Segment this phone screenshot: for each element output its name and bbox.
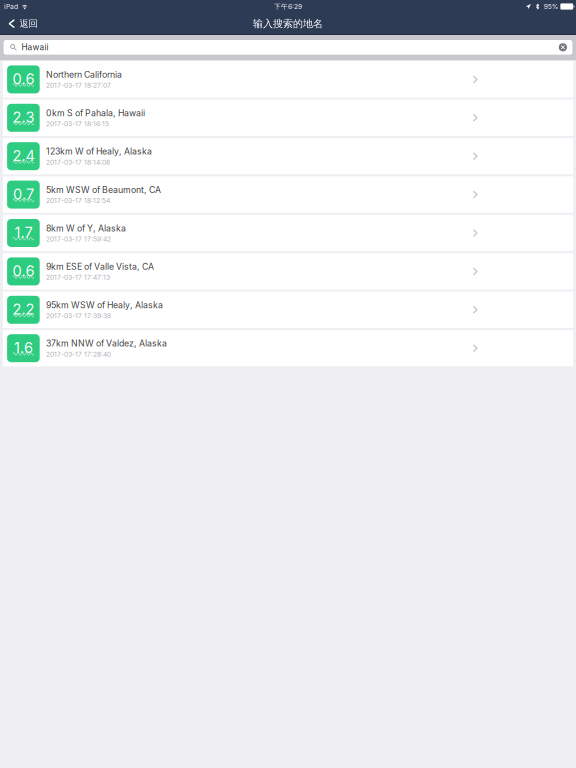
staticText: 下午6:29 [274, 2, 302, 11]
button[interactable]: 1.6 [3, 330, 573, 366]
staticText: 0.6 [12, 70, 34, 88]
staticText: 2.4 [12, 147, 34, 164]
staticText: 返回 [20, 18, 38, 30]
button[interactable]: 0.7 [3, 176, 573, 213]
staticText: 0.7 [13, 185, 34, 203]
staticText: 2017-03-17 18:27:07 [46, 81, 111, 89]
staticText: 2017-03-17 17:59:42 [46, 235, 111, 243]
staticText: 95km WSW of Healy, Alaska [46, 300, 163, 310]
staticText: 2017-03-17 17:47:13 [46, 273, 110, 281]
staticText: 8km W of Y, Alaska [46, 223, 126, 233]
staticText: 37km NNW of Valdez, Alaska [46, 338, 167, 349]
staticText: 2.2 [12, 300, 34, 318]
button[interactable]: Clear search text [559, 41, 572, 53]
staticText: 2.3 [12, 108, 34, 126]
staticText: Hawaii [22, 42, 49, 52]
staticText: 1.6 [14, 339, 33, 356]
staticText: 5km WSW of Beaumont, CA [46, 184, 161, 195]
staticText: 1.7 [14, 224, 32, 241]
staticText: 2017-03-17 18:14:08 [46, 158, 110, 166]
staticText: 2017-03-17 17:28:40 [46, 350, 111, 358]
staticText: 输入搜索的地名 [253, 17, 323, 30]
staticText: 95% [544, 2, 559, 11]
button[interactable]: 2.4 [3, 138, 573, 174]
staticText: Northern California [46, 69, 122, 80]
button[interactable]: 0.6 [3, 61, 573, 98]
button[interactable]: 1.7 [3, 215, 573, 251]
button[interactable]: 2.3 [3, 100, 573, 136]
staticText: 0.6 [12, 262, 34, 280]
staticText: iPad [4, 2, 18, 11]
staticText: 2017-03-17 18:16:15 [46, 120, 109, 128]
button[interactable]: 2.2 [3, 292, 573, 328]
staticText: 9km ESE of Valle Vista, CA [46, 261, 154, 272]
staticText: 123km W of Healy, Alaska [46, 146, 152, 157]
staticText: 2017-03-17 17:39:38 [46, 312, 111, 320]
button[interactable]: 返回 [0, 13, 46, 35]
staticText: 0km S of Pahala, Hawaii [46, 108, 145, 118]
staticText: 2017-03-17 18:12:54 [46, 197, 110, 205]
button[interactable]: 0.6 [3, 253, 573, 290]
